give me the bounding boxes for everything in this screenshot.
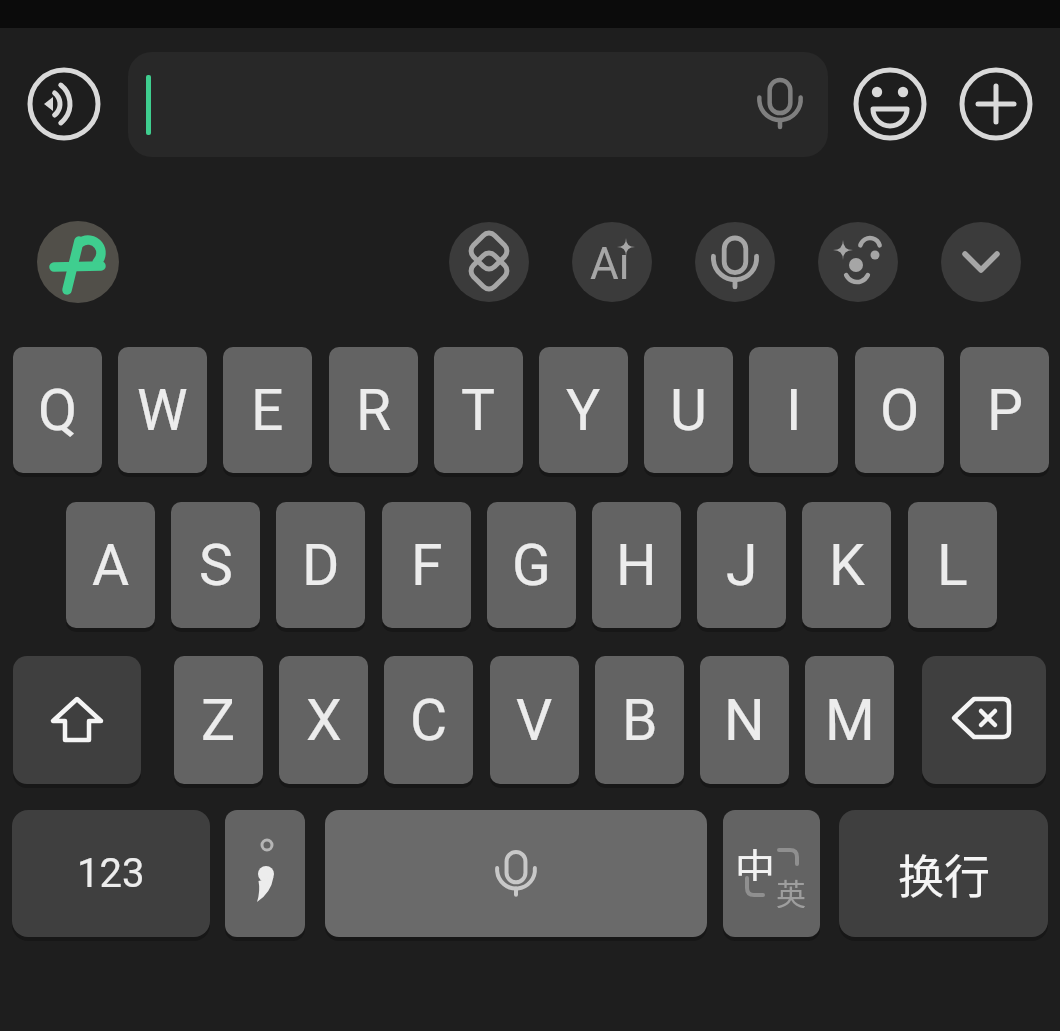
button[interactable]	[28, 68, 100, 140]
staticText: G	[512, 532, 551, 599]
button[interactable]: Y	[539, 347, 628, 473]
button[interactable]	[922, 656, 1046, 784]
button[interactable]: U	[644, 347, 733, 473]
button[interactable]: G	[487, 502, 576, 628]
staticText: I	[786, 377, 802, 444]
button[interactable]	[572, 222, 652, 302]
staticText: S	[199, 532, 233, 599]
staticText: H	[616, 532, 657, 599]
button[interactable]: 123	[12, 810, 210, 937]
button[interactable]: L	[908, 502, 997, 628]
button[interactable]: Q	[13, 347, 102, 473]
button[interactable]: J	[697, 502, 786, 628]
staticText: Z	[201, 687, 236, 754]
staticText: Q	[38, 377, 78, 444]
staticText: C	[410, 687, 448, 754]
button[interactable]: C	[384, 656, 473, 784]
button[interactable]	[723, 810, 820, 937]
staticText: E	[251, 377, 284, 444]
staticText: J	[726, 532, 758, 599]
staticText: K	[829, 532, 865, 599]
button[interactable]: S	[171, 502, 260, 628]
button[interactable]: 换行	[839, 810, 1048, 937]
button[interactable]: W	[118, 347, 207, 473]
button[interactable]: X	[279, 656, 368, 784]
staticText: B	[622, 687, 658, 754]
button[interactable]: F	[382, 502, 471, 628]
staticText: F	[411, 532, 443, 599]
button[interactable]: R	[329, 347, 418, 473]
staticText: Aı	[590, 238, 630, 290]
button[interactable]	[225, 810, 305, 937]
button[interactable]: E	[223, 347, 312, 473]
button[interactable]: A	[66, 502, 155, 628]
button[interactable]	[128, 52, 828, 157]
staticText: O	[880, 377, 920, 444]
button[interactable]: B	[595, 656, 684, 784]
staticText: 英	[776, 870, 806, 908]
button[interactable]	[818, 222, 898, 302]
staticText: M	[825, 687, 875, 754]
staticText: W	[137, 377, 188, 444]
button[interactable]	[960, 68, 1032, 140]
button[interactable]	[449, 222, 529, 302]
button[interactable]: Z	[174, 656, 263, 784]
button[interactable]	[941, 222, 1021, 302]
staticText: X	[306, 687, 342, 754]
staticText: Y	[566, 377, 601, 444]
staticText: R	[356, 377, 392, 444]
staticText: A	[92, 532, 130, 599]
staticText: 换行	[898, 840, 990, 907]
button[interactable]	[695, 222, 775, 302]
button[interactable]: I	[749, 347, 838, 473]
staticText: L	[937, 532, 968, 599]
staticText: N	[724, 687, 765, 754]
button[interactable]: M	[805, 656, 894, 784]
staticText: V	[516, 687, 553, 754]
button[interactable]	[854, 68, 926, 140]
button[interactable]: O	[855, 347, 944, 473]
button[interactable]	[37, 221, 119, 303]
button[interactable]	[13, 656, 141, 784]
staticText: U	[670, 377, 707, 444]
staticText: 123	[77, 850, 145, 897]
staticText: T	[461, 377, 496, 444]
button[interactable]: N	[700, 656, 789, 784]
button[interactable]: V	[490, 656, 579, 784]
staticText: D	[302, 532, 340, 599]
button[interactable]: P	[960, 347, 1049, 473]
button[interactable]	[325, 810, 707, 937]
button[interactable]: T	[434, 347, 523, 473]
staticText: 中	[735, 837, 775, 881]
button[interactable]: D	[276, 502, 365, 628]
staticText: P	[987, 377, 1023, 444]
button[interactable]: K	[802, 502, 891, 628]
button[interactable]: H	[592, 502, 681, 628]
